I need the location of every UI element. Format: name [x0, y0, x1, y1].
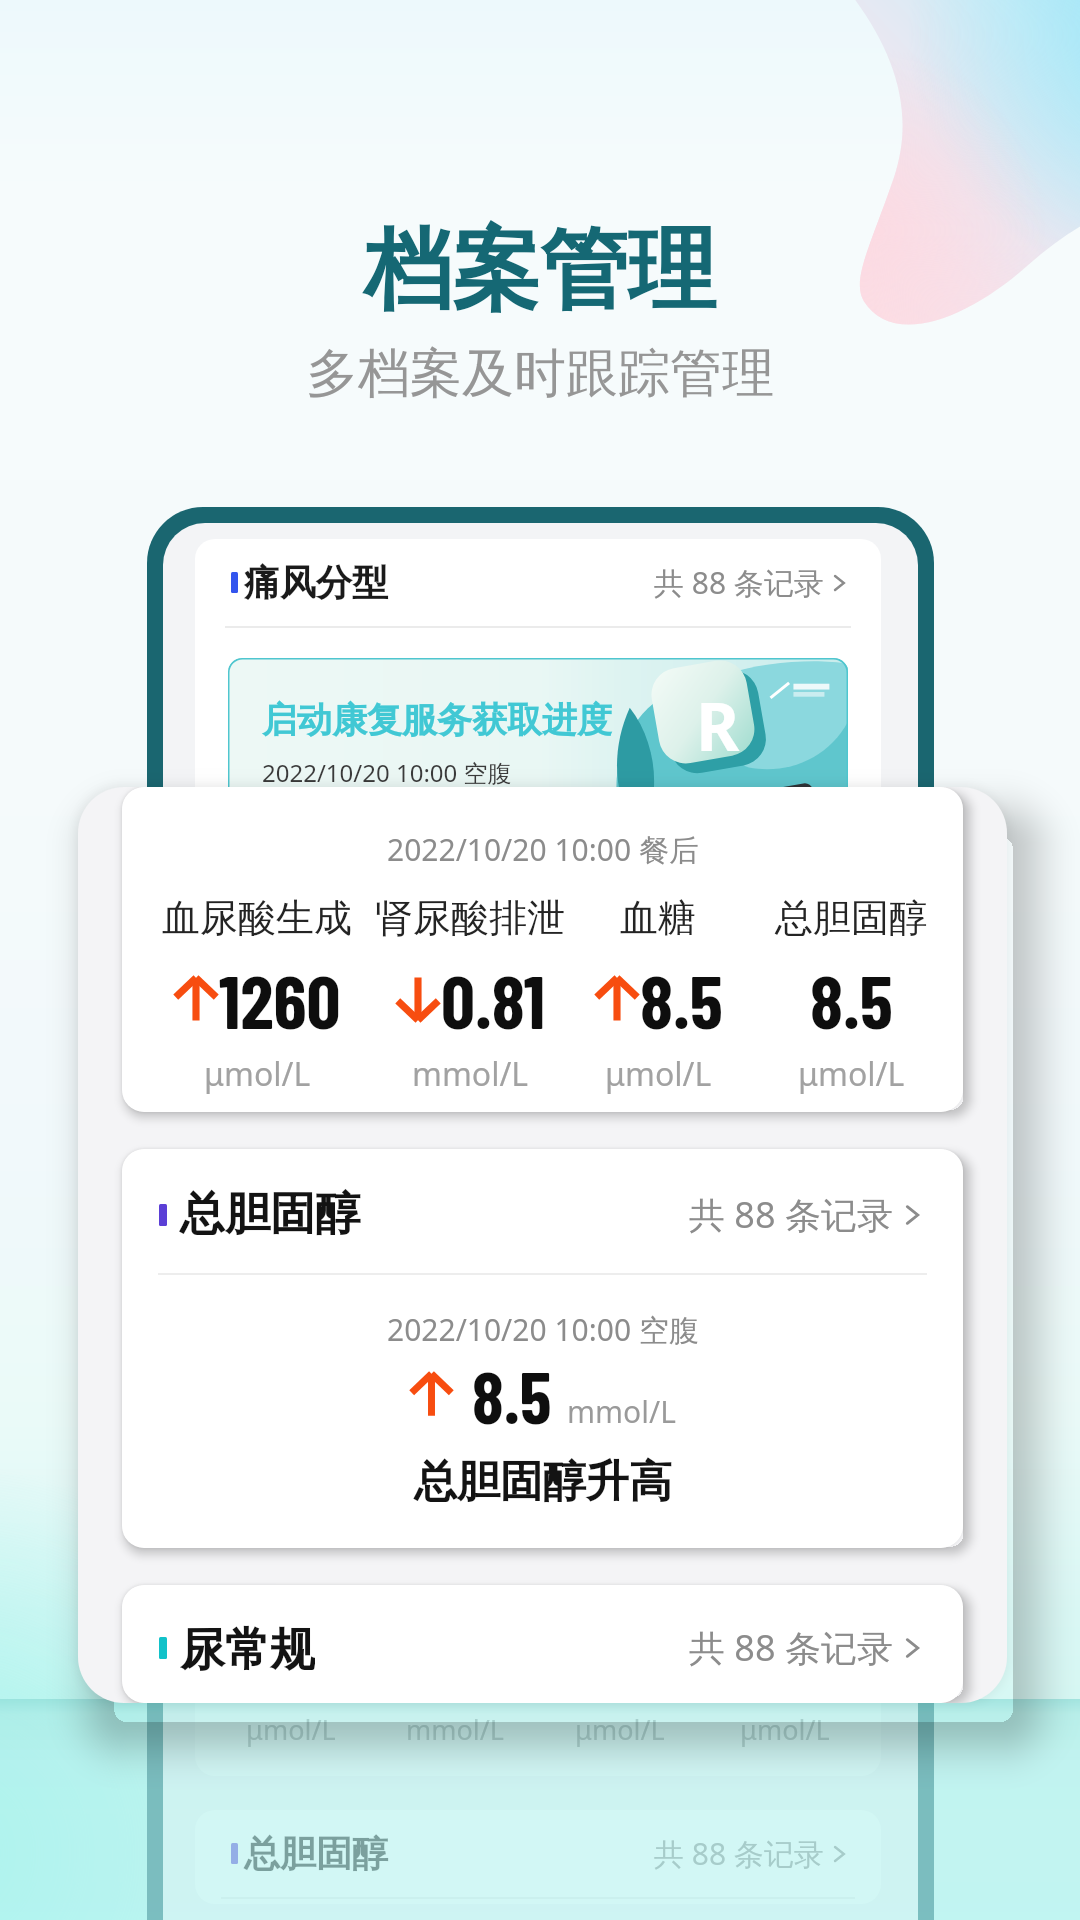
button[interactable]: 总胆固醇 — [195, 1810, 881, 1897]
staticText: 共 88 条记录 — [689, 1623, 893, 1672]
staticText: 1260 — [268, 1643, 349, 1703]
staticText: 2022/10/20 10:00 空腹 — [262, 756, 512, 789]
button[interactable]: R — [228, 658, 848, 824]
staticText: μmol/L — [798, 1052, 905, 1096]
staticText: 总胆固醇 — [180, 1186, 360, 1243]
staticText: 共 88 条记录 — [689, 1190, 893, 1239]
staticText: 8.5 — [472, 1352, 552, 1438]
staticText: 2022/10/20 10:00 餐后 — [392, 1533, 684, 1571]
staticText: 痛风分型 — [244, 560, 388, 605]
staticText: 8.5 — [757, 1643, 813, 1703]
staticText: μmol/L — [575, 1711, 665, 1748]
staticText: 血糖 — [620, 894, 696, 942]
staticText: 档案管理 — [364, 215, 716, 326]
staticText: mmol/L — [412, 1052, 529, 1096]
staticText: 2022/10/20 10:00 空腹 — [387, 1309, 699, 1350]
staticText: μmol/L — [246, 1711, 336, 1748]
button[interactable]: 尿常规 — [122, 1585, 963, 1703]
staticText: 共 88 条记录 — [654, 1833, 824, 1874]
staticText: 肾尿酸排泄 — [375, 894, 565, 942]
staticText: 血尿酸生成 — [216, 1593, 366, 1631]
staticText: 尿常规 — [180, 1622, 315, 1673]
staticText: μmol/L — [740, 1711, 830, 1748]
staticText: 2022/10/20 10:00 餐后 — [387, 829, 699, 870]
staticText: μmol/L — [204, 1052, 311, 1096]
staticText: mmol/L — [406, 1711, 504, 1748]
staticText: 8.5 — [640, 954, 723, 1044]
staticText: 血尿酸生成 — [162, 894, 352, 942]
staticText: 8.5 — [810, 954, 893, 1044]
staticText: R — [696, 680, 740, 770]
staticText: 0.81 — [441, 954, 545, 1044]
button[interactable]: 痛风分型 — [195, 539, 881, 626]
staticText: 总胆固醇升高 — [414, 1455, 672, 1509]
staticText: μmol/L — [605, 1052, 712, 1096]
staticText: 总胆固醇 — [775, 894, 927, 942]
staticText: 总胆固醇 — [244, 1831, 388, 1876]
staticText: mmol/L — [567, 1391, 676, 1432]
button[interactable]: 总胆固醇 — [122, 1149, 963, 1273]
staticText: 共 88 条记录 — [654, 562, 824, 603]
staticText: 启动康复服务获取进度 — [262, 698, 612, 742]
staticText: 1260 — [219, 954, 341, 1044]
staticText: 多档案及时跟踪管理 — [306, 341, 774, 407]
